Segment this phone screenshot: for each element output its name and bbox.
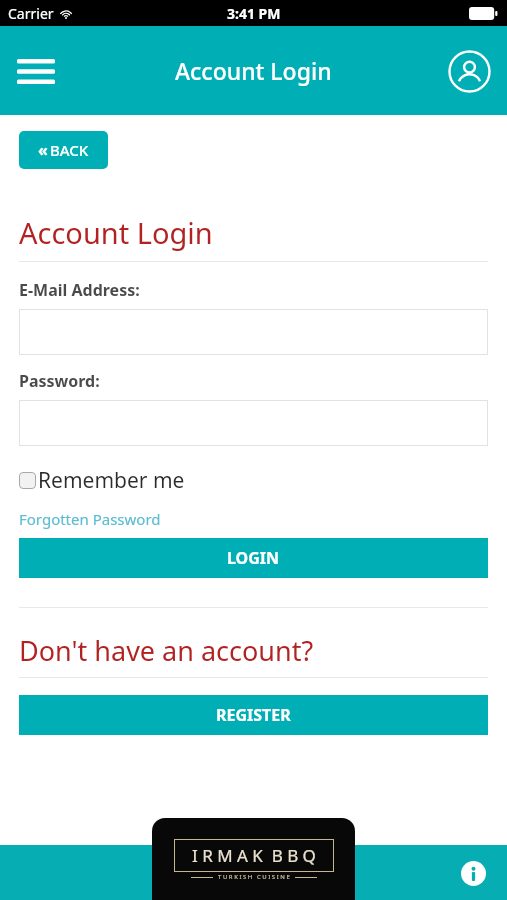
button[interactable]: « xyxy=(19,131,108,169)
staticText: « xyxy=(38,139,48,161)
button[interactable]: Remember me xyxy=(19,466,185,495)
staticText: Remember me xyxy=(38,466,185,495)
button[interactable] xyxy=(19,400,488,446)
button[interactable]: REGISTER xyxy=(19,695,488,735)
button[interactable]: Information xyxy=(453,853,493,893)
button[interactable] xyxy=(19,309,488,355)
staticText: Account Login xyxy=(175,55,332,86)
button[interactable]: Forgotten Password xyxy=(19,509,161,529)
button[interactable]: I R M A K B B Q xyxy=(152,818,355,900)
staticText: 3:41 PM xyxy=(227,4,281,23)
button[interactable]: LOGIN xyxy=(19,538,488,578)
staticText: Don't have an account? xyxy=(19,632,314,669)
staticText: Forgotten Password xyxy=(19,509,161,529)
staticText: E-Mail Address: xyxy=(19,279,140,301)
button[interactable]: Menu xyxy=(12,47,60,95)
staticText: Password: xyxy=(19,370,100,392)
staticText: Account Login xyxy=(19,213,213,252)
staticText: REGISTER xyxy=(216,704,291,726)
staticText: BACK xyxy=(50,140,89,160)
staticText: LOGIN xyxy=(227,547,280,569)
button[interactable]: Account xyxy=(445,47,493,95)
staticText: T U R K I S H C U I S I N E xyxy=(218,873,290,881)
staticText: Carrier xyxy=(8,4,54,23)
staticText: I R M A K B B Q xyxy=(192,844,316,867)
